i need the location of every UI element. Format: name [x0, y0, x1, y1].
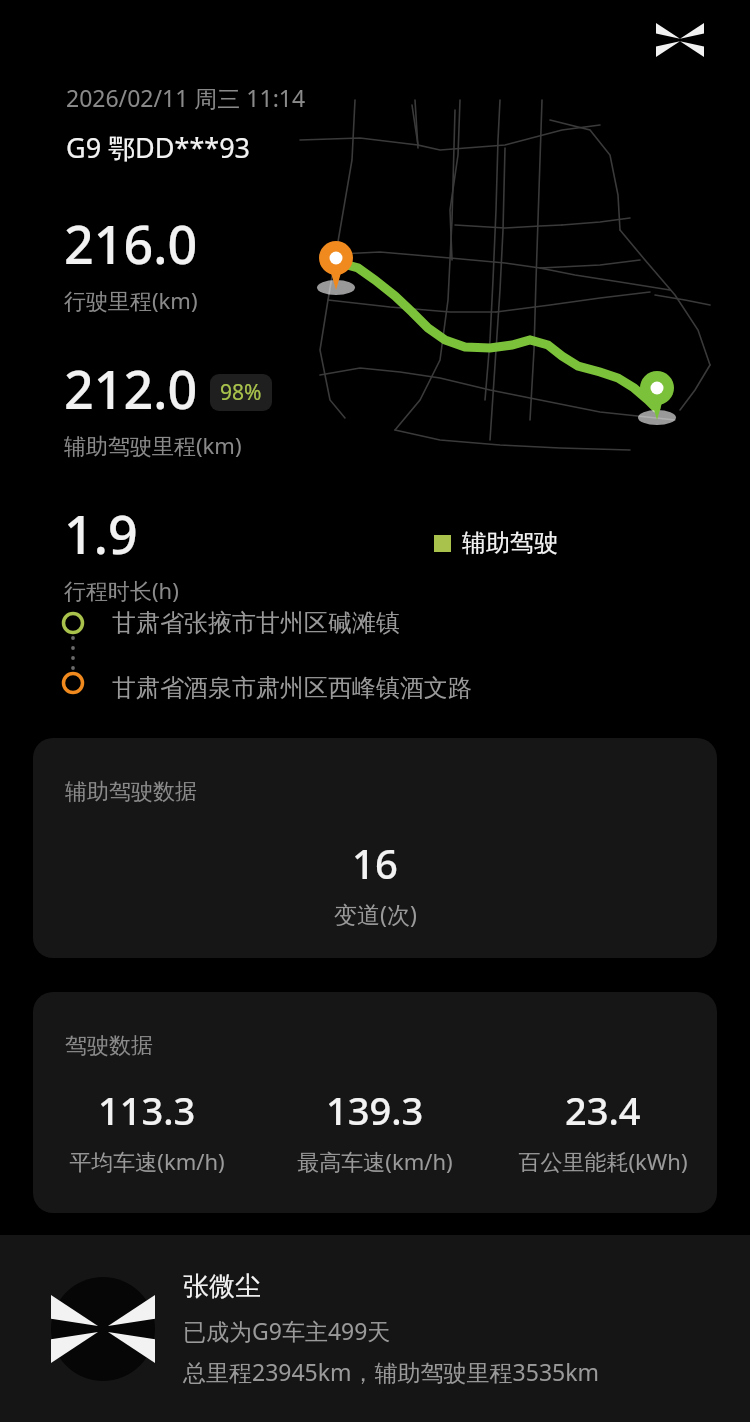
staticText: G9 鄂DD***93: [66, 129, 251, 166]
staticText: 2026/02/11 周三 11:14: [66, 82, 306, 113]
staticText: 变道(次): [334, 898, 417, 929]
staticText: 已成为G9车主499天: [183, 1315, 391, 1346]
staticText: 最高车速(km/h): [297, 1146, 453, 1176]
button[interactable]: 辅助驾驶数据: [33, 738, 717, 958]
staticText: 甘肃省酒泉市肃州区西峰镇酒文路: [112, 673, 472, 703]
staticText: 行程时长(h): [64, 575, 179, 605]
staticText: 辅助驾驶里程(km): [64, 430, 242, 460]
button[interactable]: 驾驶数据: [33, 992, 717, 1213]
staticText: 百公里能耗(kWh): [518, 1146, 688, 1176]
staticText: 总里程23945km，辅助驾驶里程3535km: [183, 1356, 599, 1387]
staticText: 驾驶数据: [65, 1032, 153, 1060]
staticText: 98%: [220, 378, 262, 407]
staticText: 行驶里程(km): [64, 285, 198, 315]
staticText: 张微尘: [183, 1270, 261, 1303]
button[interactable]: XPeng logo: [652, 12, 708, 68]
staticText: 平均车速(km/h): [69, 1146, 225, 1176]
button[interactable]: 张微尘: [0, 1235, 750, 1422]
staticText: 113.3: [98, 1084, 196, 1136]
staticText: 139.3: [326, 1084, 424, 1136]
staticText: 23.4: [565, 1084, 641, 1136]
staticText: 辅助驾驶数据: [65, 778, 197, 806]
staticText: 甘肃省张掖市甘州区碱滩镇: [112, 608, 400, 638]
staticText: 辅助驾驶: [462, 528, 558, 558]
staticText: 216.0: [64, 208, 198, 279]
staticText: 16: [352, 836, 398, 890]
staticText: 1.9: [64, 498, 138, 569]
staticText: 212.0: [64, 353, 198, 424]
